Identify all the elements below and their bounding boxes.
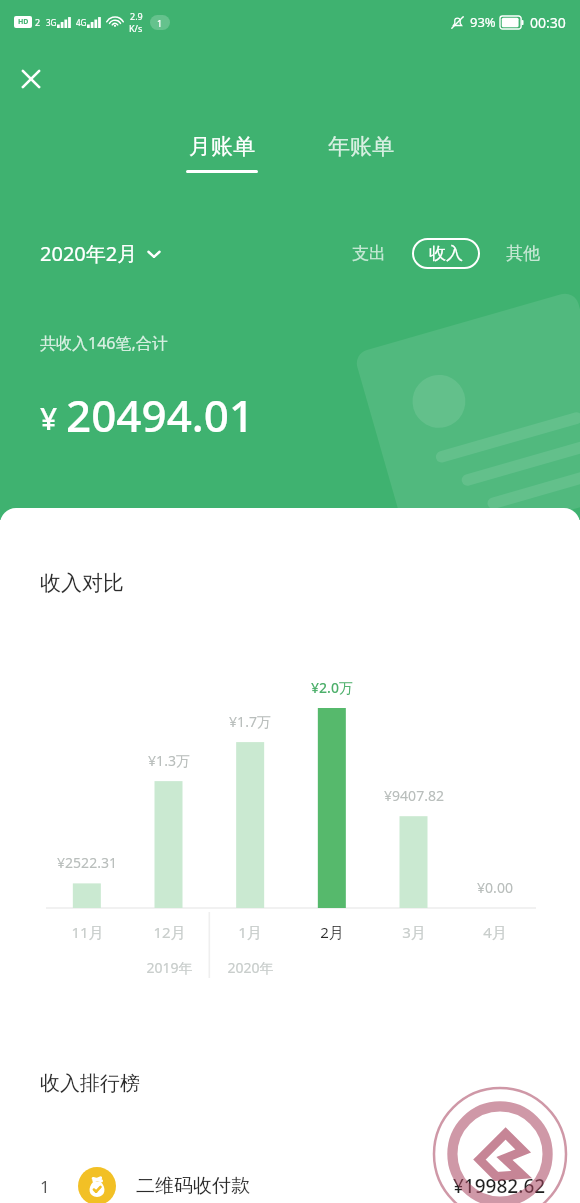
button[interactable]: 年账单 [320,133,402,161]
button[interactable]: 其他 [500,239,546,268]
staticText: K/s [129,22,143,34]
staticText: 3月 [402,922,426,942]
staticText: 2020年 [227,958,274,977]
staticText: ¥1.7万 [229,712,271,731]
staticText: 二维码收付款 [136,1174,250,1198]
staticText: 2.9 [130,10,143,22]
staticText: 1 [40,1175,50,1198]
staticText: 收入对比 [40,570,124,596]
staticText: 1月 [238,922,262,942]
staticText: ¥19982.62 [453,1173,546,1199]
staticText: ¥2522.31 [57,853,117,872]
staticText: ¥9407.82 [384,786,444,805]
staticText: 3G [46,17,57,28]
button[interactable]: 收入 [412,238,480,269]
staticText: 收入 [429,243,463,264]
button[interactable]: 支出 [346,239,392,268]
staticText: 其他 [506,243,540,264]
staticText: ¥2.0万 [311,678,353,697]
staticText: ¥1.3万 [148,751,190,770]
staticText: 1 [157,17,163,29]
staticText: 4月 [483,922,507,942]
staticText: ¥ [40,398,58,439]
staticText: HD [18,17,29,27]
staticText: ¥0.00 [477,878,513,897]
button[interactable]: 月账单 [178,133,266,173]
staticText: 支出 [352,243,386,264]
staticText: 12月 [153,922,186,942]
staticText: 20494.01 [66,385,255,445]
staticText: 4G [76,17,87,28]
staticText: 11月 [71,922,104,942]
button[interactable]: Close [8,56,54,102]
staticText: 月账单 [189,133,255,161]
staticText: 2 [35,16,41,28]
staticText: 2019年 [146,958,193,977]
staticText: 00:30 [530,13,566,32]
staticText: 共收入146笔,合计 [40,332,168,354]
staticText: 收入排行榜 [40,1071,140,1096]
staticText: 93% [470,13,496,31]
button[interactable]: 2020年2月 [40,240,161,267]
staticText: 2月 [320,922,344,942]
button[interactable]: 1 [0,1156,580,1203]
staticText: 年账单 [328,133,394,161]
staticText: 2020年2月 [40,240,138,267]
